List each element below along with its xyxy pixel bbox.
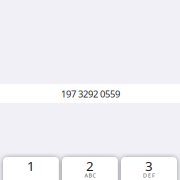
button[interactable]: 2 bbox=[62, 157, 118, 180]
staticText: 1 bbox=[27, 157, 35, 175]
staticText: 2 bbox=[86, 157, 94, 175]
button[interactable]: 1 bbox=[3, 157, 59, 180]
staticText: 197 3292 0559 bbox=[61, 88, 120, 100]
staticText: DEF bbox=[143, 172, 155, 179]
staticText: ABC bbox=[84, 172, 95, 179]
staticText: 3 bbox=[145, 157, 153, 175]
button[interactable]: 3 bbox=[121, 157, 177, 180]
